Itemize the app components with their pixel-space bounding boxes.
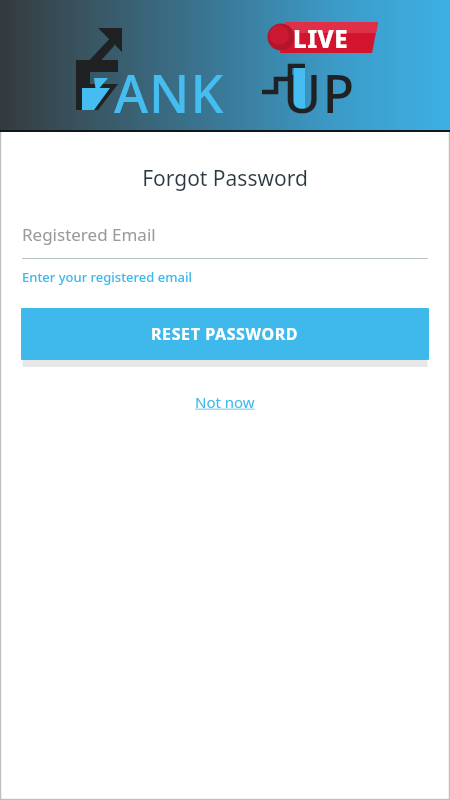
staticText: Enter your registered email <box>22 268 192 286</box>
staticText: ANK <box>114 57 225 128</box>
button[interactable]: Registered Email <box>22 223 428 259</box>
staticText: Registered Email <box>22 223 156 246</box>
staticText: Forgot Password <box>0 164 450 193</box>
staticText: UP <box>283 57 356 128</box>
button[interactable]: RESET PASSWORD <box>21 308 429 360</box>
staticText: LIVE <box>293 22 348 55</box>
staticText: Not now <box>195 392 255 412</box>
staticText: RESET PASSWORD <box>151 323 299 345</box>
button[interactable]: Not now <box>187 388 263 416</box>
